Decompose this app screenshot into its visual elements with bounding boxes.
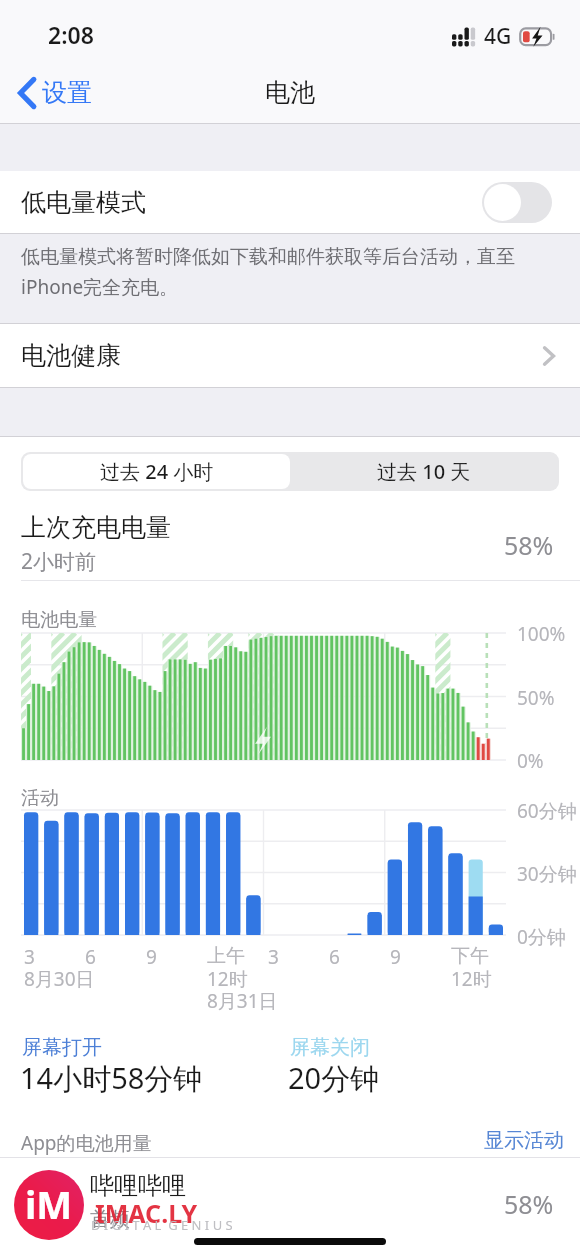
staticText: 30分钟	[517, 861, 577, 887]
staticText: D I G I T A L G E N I U S	[91, 1216, 233, 1234]
staticText: 58%	[504, 528, 554, 562]
staticText: 8月31日	[207, 988, 278, 1014]
staticText: 下午	[451, 944, 489, 968]
staticText: 8月30日	[24, 966, 95, 992]
staticText: 过去 24 小时	[100, 458, 214, 485]
staticText: 6	[329, 944, 340, 970]
staticText: 2小时前	[21, 547, 97, 576]
staticText: 上午	[207, 944, 245, 968]
staticText: 3	[24, 944, 35, 970]
staticText: 电池健康	[21, 340, 121, 371]
staticText: 3	[268, 944, 279, 970]
staticText: 20分钟	[288, 1058, 380, 1098]
staticText: 电池	[265, 77, 315, 108]
button[interactable]: 设置	[6, 62, 106, 123]
staticText: 过去 10 天	[377, 458, 471, 485]
staticText: 首频	[90, 1207, 130, 1232]
staticText: 活动	[21, 786, 59, 810]
staticText: 12时	[451, 966, 492, 992]
button[interactable]: 低电量模式开关	[482, 182, 552, 223]
staticText: 6	[85, 944, 96, 970]
staticText: 电池电量	[21, 608, 97, 632]
staticText: 2:08	[48, 19, 94, 50]
staticText: 12时	[207, 966, 248, 992]
staticText: 上次充电电量	[21, 512, 171, 543]
button[interactable]: 显示活动	[476, 1120, 572, 1161]
staticText: 14小时58分钟	[20, 1058, 203, 1098]
staticText: App的电池用量	[21, 1130, 152, 1156]
staticText: 100%	[517, 621, 566, 647]
staticText: 9	[390, 944, 401, 970]
staticText: iM	[25, 1178, 73, 1230]
staticText: 58%	[504, 1187, 554, 1221]
staticText: 0分钟	[517, 924, 566, 950]
button[interactable]: 过去 10 天	[290, 454, 557, 489]
button[interactable]: 过去 24 小时	[23, 454, 290, 489]
staticText: IMAC.LY	[95, 1196, 198, 1230]
staticText: 60分钟	[517, 798, 577, 824]
staticText: 显示活动	[484, 1128, 564, 1153]
button[interactable]: 哔哩哔哩	[0, 1158, 580, 1255]
staticText: 0%	[517, 748, 544, 774]
button[interactable]: 低电量模式	[0, 171, 580, 234]
staticText: 哔哩哔哩	[90, 1171, 186, 1201]
staticText: 低电量模式	[21, 187, 146, 218]
staticText: 低电量模式将暂时降低如下载和邮件获取等后台活动，直至 iPhone完全充电。	[21, 245, 515, 299]
staticText: 50%	[517, 685, 555, 711]
staticText: 屏幕关闭	[290, 1035, 370, 1060]
staticText: 屏幕打开	[22, 1035, 102, 1060]
button[interactable]: 电池健康	[0, 324, 580, 387]
staticText: 设置	[42, 77, 92, 108]
staticText: 9	[146, 944, 157, 970]
staticText: 4G	[484, 22, 512, 51]
